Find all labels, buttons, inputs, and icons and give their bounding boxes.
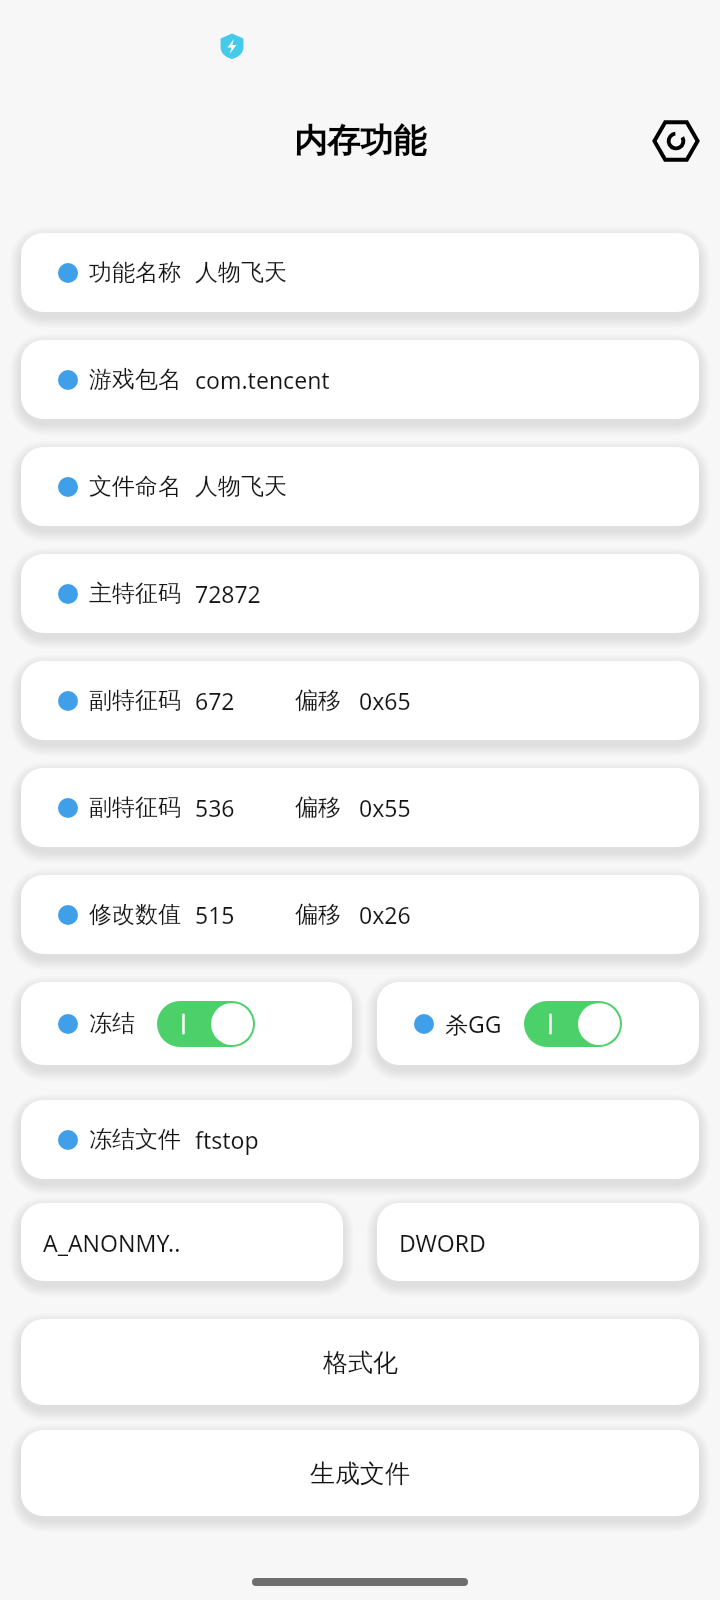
staticText: 游戏包名 [89,365,181,394]
button[interactable]: 格式化 [21,1319,699,1405]
staticText: 72872 [195,578,261,609]
button[interactable]: 功能名称 [21,233,699,312]
staticText: 536 [195,792,235,823]
button[interactable]: Refresh [650,115,702,167]
button[interactable]: 杀GG [377,982,699,1065]
staticText: 副特征码 [89,793,181,822]
button[interactable]: 冻结 [21,982,352,1065]
button[interactable]: 修改数值 [21,875,699,954]
staticText: 人物飞天 [195,258,287,287]
button[interactable]: 游戏包名 [21,340,699,419]
staticText: 515 [195,899,235,930]
staticText: ftstop [195,1124,259,1155]
staticText: A_ANONMY.. [43,1227,181,1258]
button[interactable]: 冻结文件 [21,1100,699,1179]
staticText: DWORD [399,1227,486,1258]
button[interactable]: DWORD [377,1203,699,1281]
staticText: 672 [195,685,235,716]
staticText: 冻结文件 [89,1125,181,1154]
staticText: 0x55 [359,792,411,823]
button[interactable]: A_ANONMY.. [21,1203,343,1281]
button[interactable]: 文件命名 [21,447,699,526]
staticText: 主特征码 [89,579,181,608]
button[interactable]: 副特征码 [21,768,699,847]
staticText: 生成文件 [310,1458,410,1489]
staticText: 冻结 [89,1009,135,1038]
staticText: 功能名称 [89,258,181,287]
staticText: 偏移 [295,793,341,822]
button[interactable]: 主特征码 [21,554,699,633]
staticText: 副特征码 [89,686,181,715]
staticText: 偏移 [295,900,341,929]
button[interactable]: 副特征码 [21,661,699,740]
staticText: 修改数值 [89,900,181,929]
staticText: 人物飞天 [195,472,287,501]
button[interactable]: 生成文件 [21,1430,699,1516]
staticText: 0x65 [359,685,411,716]
staticText: com.tencent [195,364,330,395]
staticText: 0x26 [359,899,411,930]
staticText: 偏移 [295,686,341,715]
staticText: 内存功能 [294,120,426,162]
staticText: 杀GG [445,1008,502,1039]
staticText: 文件命名 [89,472,181,501]
staticText: 格式化 [323,1347,398,1378]
